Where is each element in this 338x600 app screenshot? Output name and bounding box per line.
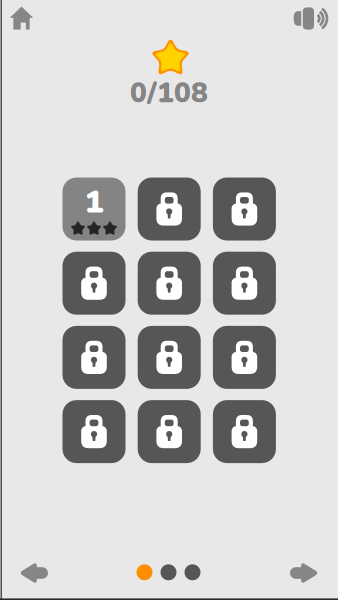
button[interactable]: Home xyxy=(10,6,33,29)
button[interactable]: Locked level xyxy=(138,252,201,315)
button[interactable]: Locked level xyxy=(62,252,125,315)
button[interactable]: Locked level xyxy=(213,400,276,463)
button[interactable]: Locked level xyxy=(213,326,276,389)
button[interactable]: Previous page xyxy=(18,560,48,585)
button[interactable]: Locked level xyxy=(62,400,125,463)
button[interactable]: Locked level xyxy=(213,177,276,240)
button[interactable]: Locked level xyxy=(138,326,201,389)
button[interactable]: Locked level xyxy=(138,400,201,463)
staticText: 1 xyxy=(84,180,103,224)
staticText: 0/108 xyxy=(130,74,208,112)
button[interactable]: Locked level xyxy=(62,326,125,389)
button[interactable]: Next page xyxy=(290,560,320,585)
button[interactable]: Locked level xyxy=(138,177,201,240)
button[interactable]: Locked level xyxy=(213,252,276,315)
button[interactable]: Level 1 xyxy=(62,177,125,240)
button[interactable]: Sound xyxy=(293,7,327,30)
